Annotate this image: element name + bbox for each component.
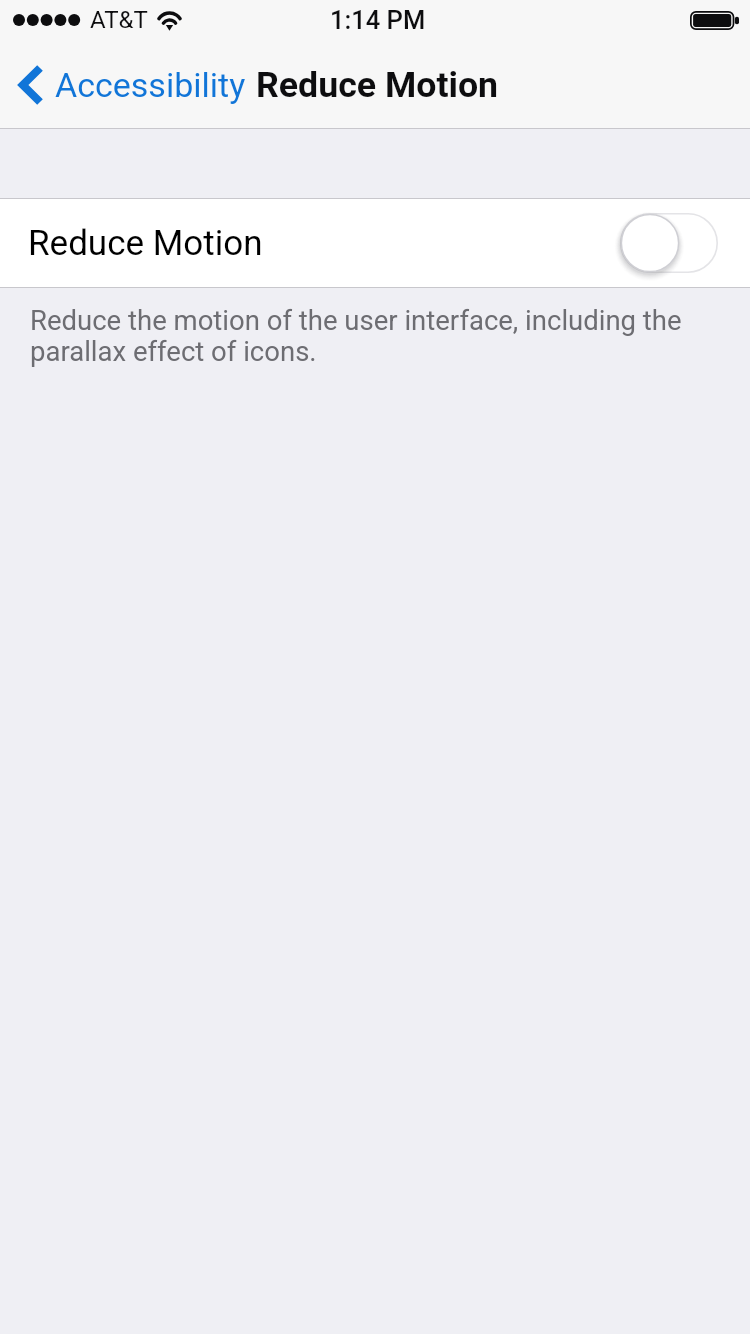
staticText: AT&T <box>90 6 148 34</box>
button[interactable]: Reduce Motion, off <box>620 213 718 273</box>
staticText: Reduce Motion <box>256 64 499 106</box>
staticText: Reduce the motion of the user interface,… <box>30 304 682 368</box>
staticText: 1:14 PM <box>330 5 426 35</box>
button[interactable]: Reduce Motion <box>0 199 750 287</box>
staticText: Reduce Motion <box>28 223 263 264</box>
staticText: Accessibility <box>55 65 246 105</box>
button[interactable]: Accessibility <box>0 40 252 129</box>
